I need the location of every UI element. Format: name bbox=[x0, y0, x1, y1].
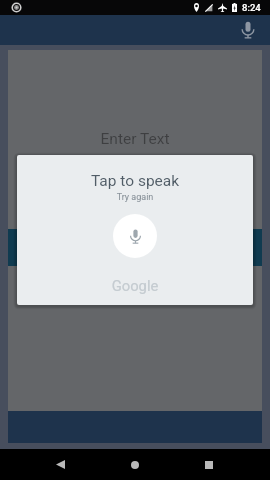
staticText: Tap to speak bbox=[17, 172, 253, 190]
staticText: 8:24 bbox=[242, 2, 261, 13]
staticText: Enter Text bbox=[8, 130, 262, 148]
button[interactable]: Voice search bbox=[236, 18, 260, 42]
button[interactable]: Speak bbox=[113, 214, 157, 258]
button[interactable] bbox=[8, 229, 262, 266]
button[interactable]: Home bbox=[119, 449, 151, 480]
staticText: Google bbox=[17, 277, 253, 294]
button[interactable]: Back bbox=[44, 449, 76, 480]
staticText: Try again bbox=[17, 192, 253, 203]
button[interactable]: Recents bbox=[193, 449, 225, 480]
